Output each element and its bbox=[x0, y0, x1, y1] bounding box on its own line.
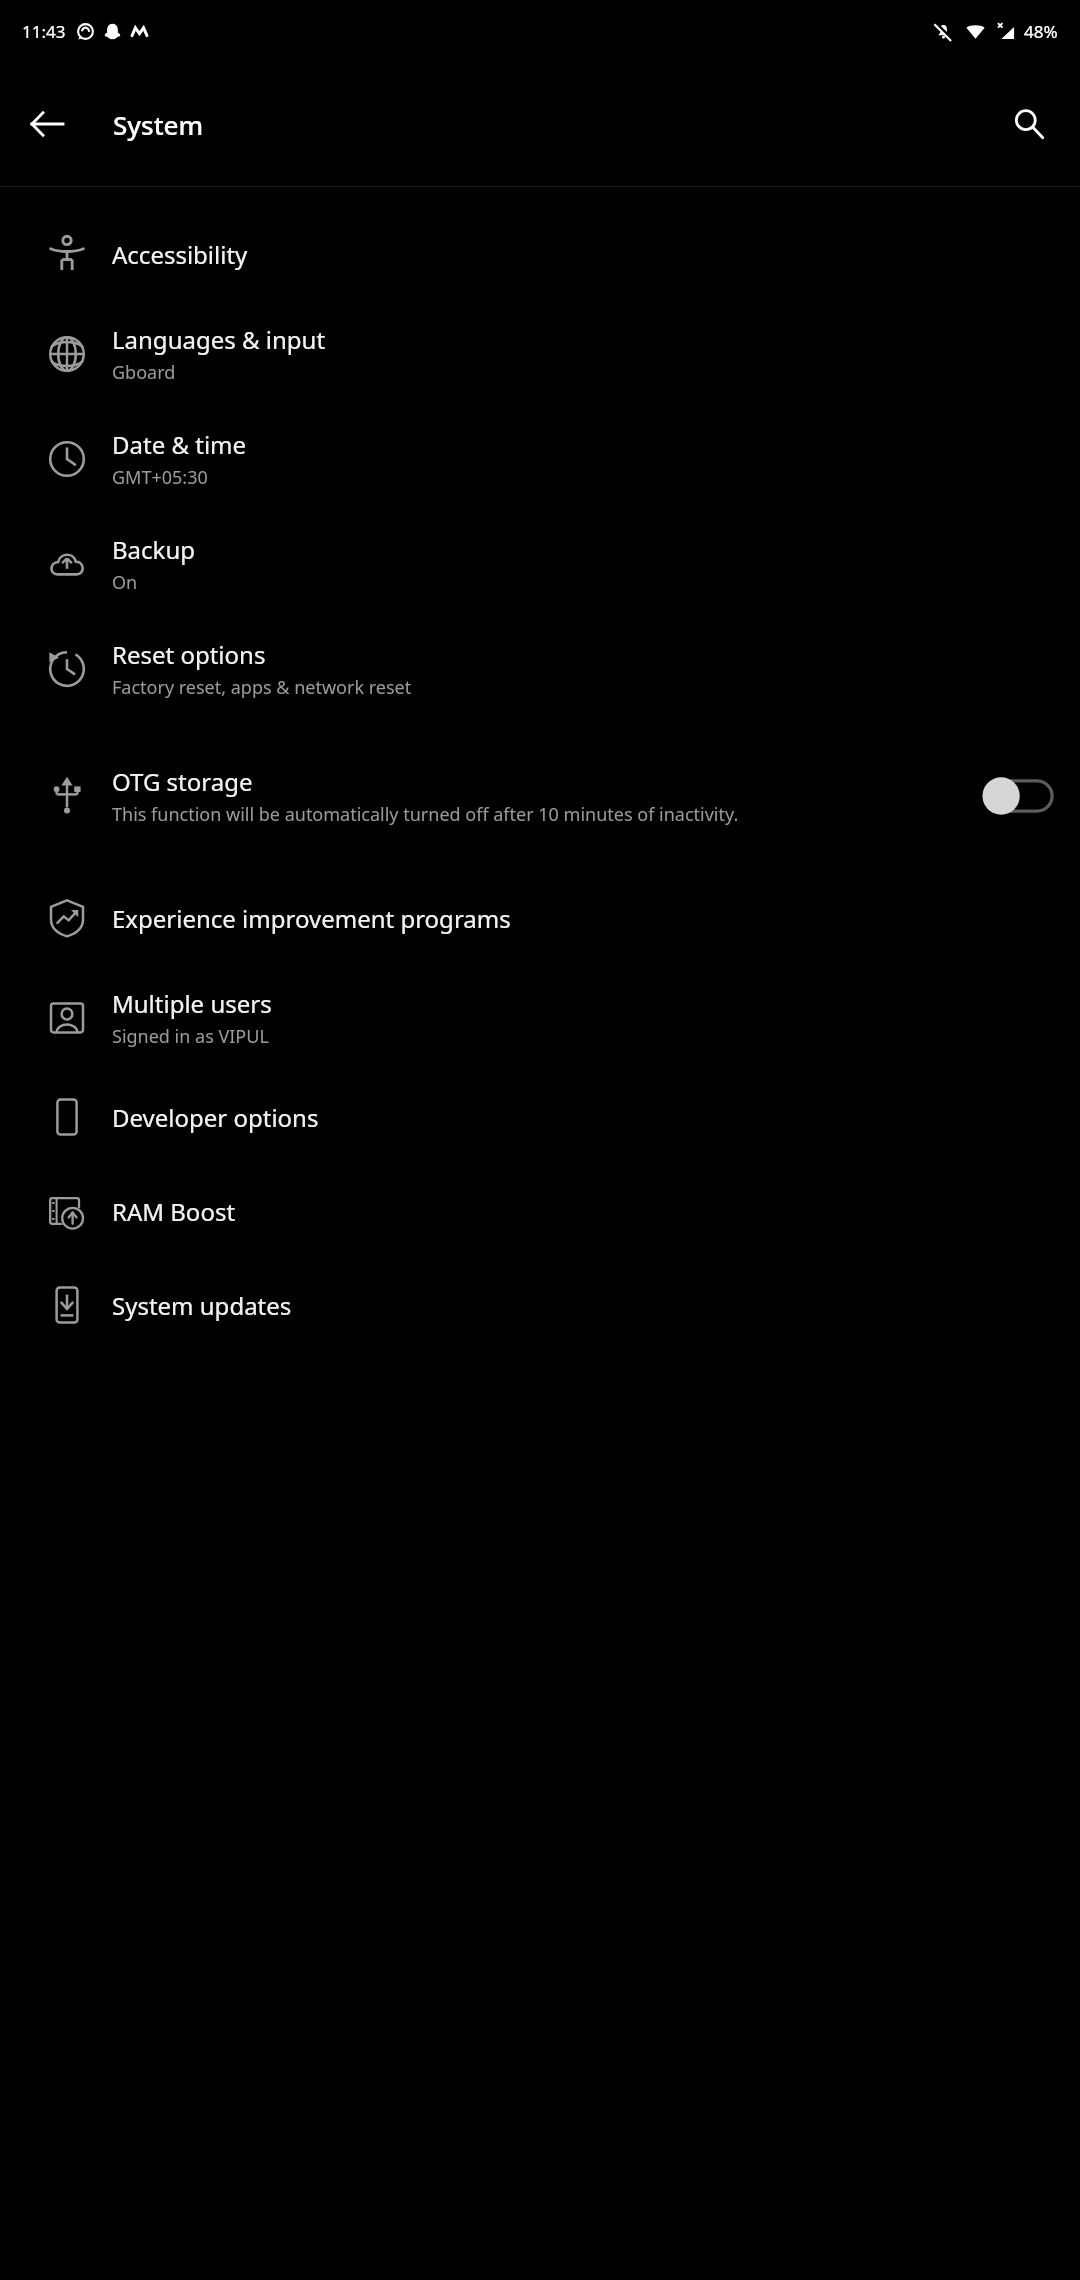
staticText: This function will be automatically turn… bbox=[112, 802, 739, 827]
staticText: Signed in as VIPUL bbox=[112, 1024, 269, 1049]
button[interactable]: RAM Boost bbox=[0, 1164, 1080, 1258]
button[interactable]: Languages & input bbox=[0, 301, 1080, 406]
button[interactable]: OTG storage toggle bbox=[974, 769, 1058, 823]
staticText: System bbox=[113, 107, 204, 142]
staticText: Accessibility bbox=[112, 238, 248, 271]
button[interactable]: OTG storage bbox=[0, 721, 1080, 871]
staticText: Developer options bbox=[112, 1101, 319, 1134]
button[interactable]: Experience improvement programs bbox=[0, 871, 1080, 965]
staticText: OTG storage bbox=[112, 765, 253, 798]
staticText: Languages & input bbox=[112, 323, 326, 356]
staticText: System updates bbox=[112, 1289, 292, 1322]
button[interactable]: Reset options bbox=[0, 616, 1080, 721]
staticText: RAM Boost bbox=[112, 1195, 236, 1228]
button[interactable]: Search bbox=[996, 91, 1062, 157]
button[interactable]: Back bbox=[14, 91, 80, 157]
staticText: GMT+05:30 bbox=[112, 465, 208, 490]
button[interactable]: System updates bbox=[0, 1258, 1080, 1352]
staticText: Experience improvement programs bbox=[112, 902, 511, 935]
staticText: Gboard bbox=[112, 360, 176, 385]
staticText: On bbox=[112, 570, 138, 595]
staticText: Factory reset, apps & network reset bbox=[112, 675, 412, 700]
staticText: 11:43 bbox=[22, 20, 66, 43]
button[interactable]: Multiple users bbox=[0, 965, 1080, 1070]
staticText: Reset options bbox=[112, 638, 266, 671]
staticText: 48% bbox=[1024, 20, 1058, 43]
button[interactable]: Date & time bbox=[0, 406, 1080, 511]
staticText: Date & time bbox=[112, 428, 247, 461]
button[interactable]: Accessibility bbox=[0, 207, 1080, 301]
staticText: Backup bbox=[112, 533, 195, 566]
staticText: Multiple users bbox=[112, 987, 272, 1020]
button[interactable]: Developer options bbox=[0, 1070, 1080, 1164]
button[interactable]: Backup bbox=[0, 511, 1080, 616]
